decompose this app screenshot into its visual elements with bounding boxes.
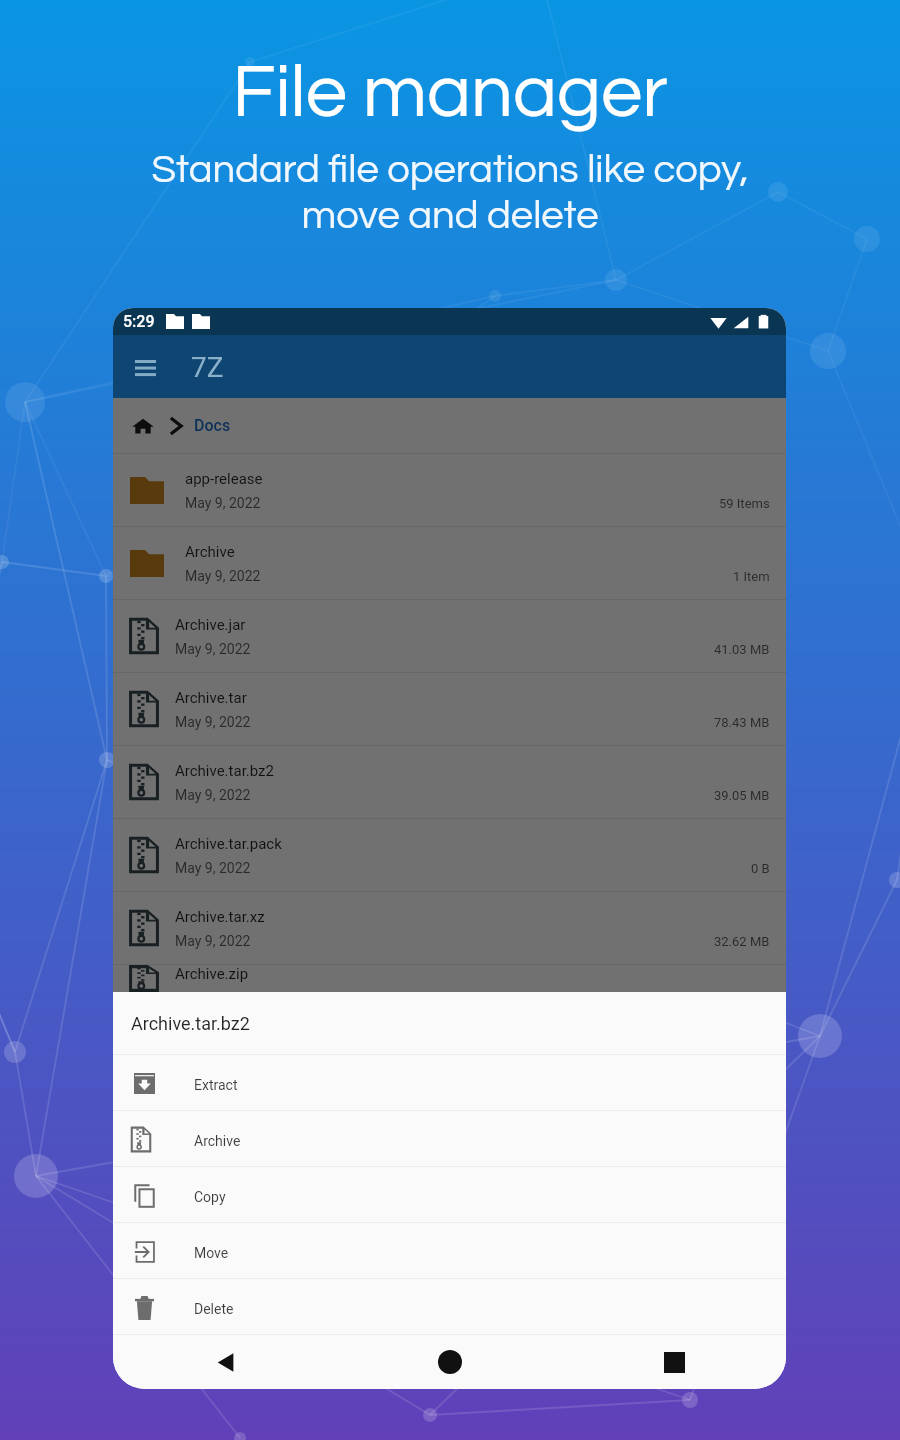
staticText: Archive.jar [175,616,246,634]
button[interactable]: Move [113,1223,786,1278]
button[interactable]: Archive [113,527,786,599]
staticText: May 9, 2022 [175,641,251,657]
staticText: 78.43 MB [714,715,770,730]
staticText: 39.05 MB [714,788,770,803]
button[interactable]: Home [426,1338,474,1386]
staticText: Archive.zip [175,965,249,983]
button[interactable]: Menu [122,344,168,390]
staticText: 32.62 MB [714,934,770,949]
staticText: Archive.tar.xz [175,908,265,926]
button[interactable]: app-release [113,454,786,526]
button[interactable]: Back [202,1338,250,1386]
staticText: Standard file operations like copy, move… [0,149,900,237]
staticText: Archive.tar.bz2 [131,1013,250,1034]
staticText: Move [194,1245,229,1261]
staticText: May 9, 2022 [185,568,261,584]
button[interactable]: Archive [113,1111,786,1166]
staticText: Copy [194,1189,226,1205]
staticText: Archive.tar.bz2 [175,762,274,780]
staticText: Archive [185,543,235,561]
button[interactable]: Recents [650,1338,698,1386]
staticText: 59 Items [719,496,770,511]
staticText: Delete [194,1301,234,1317]
staticText: Archive [194,1133,241,1149]
staticText: Docs [194,416,231,435]
staticText: May 9, 2022 [185,495,261,511]
staticText: app-release [185,470,263,488]
staticText: May 9, 2022 [175,787,251,803]
button[interactable]: Archive.tar.bz2 [113,746,786,818]
staticText: 1 Item [733,569,770,584]
staticText: Archive.tar [175,689,247,707]
button[interactable]: Delete [113,1279,786,1334]
button[interactable]: Archive.jar [113,600,786,672]
staticText: 0 B [751,861,770,876]
staticText: Archive.tar.pack [175,835,282,853]
staticText: May 9, 2022 [175,933,251,949]
button[interactable]: Extract [113,1055,786,1110]
staticText: 5:29 [123,312,155,331]
staticText: May 9, 2022 [175,860,251,876]
button[interactable]: Archive.tar.pack [113,819,786,891]
staticText: May 9, 2022 [175,714,251,730]
staticText: 41.03 MB [714,642,770,657]
staticText: 7Z [191,351,224,384]
button[interactable]: Copy [113,1167,786,1222]
button[interactable]: Archive.tar [113,673,786,745]
staticText: Extract [194,1077,238,1093]
button[interactable]: Archive.zip [113,965,786,992]
staticText: File manager [0,55,900,131]
button[interactable]: Archive.tar.xz [113,892,786,964]
